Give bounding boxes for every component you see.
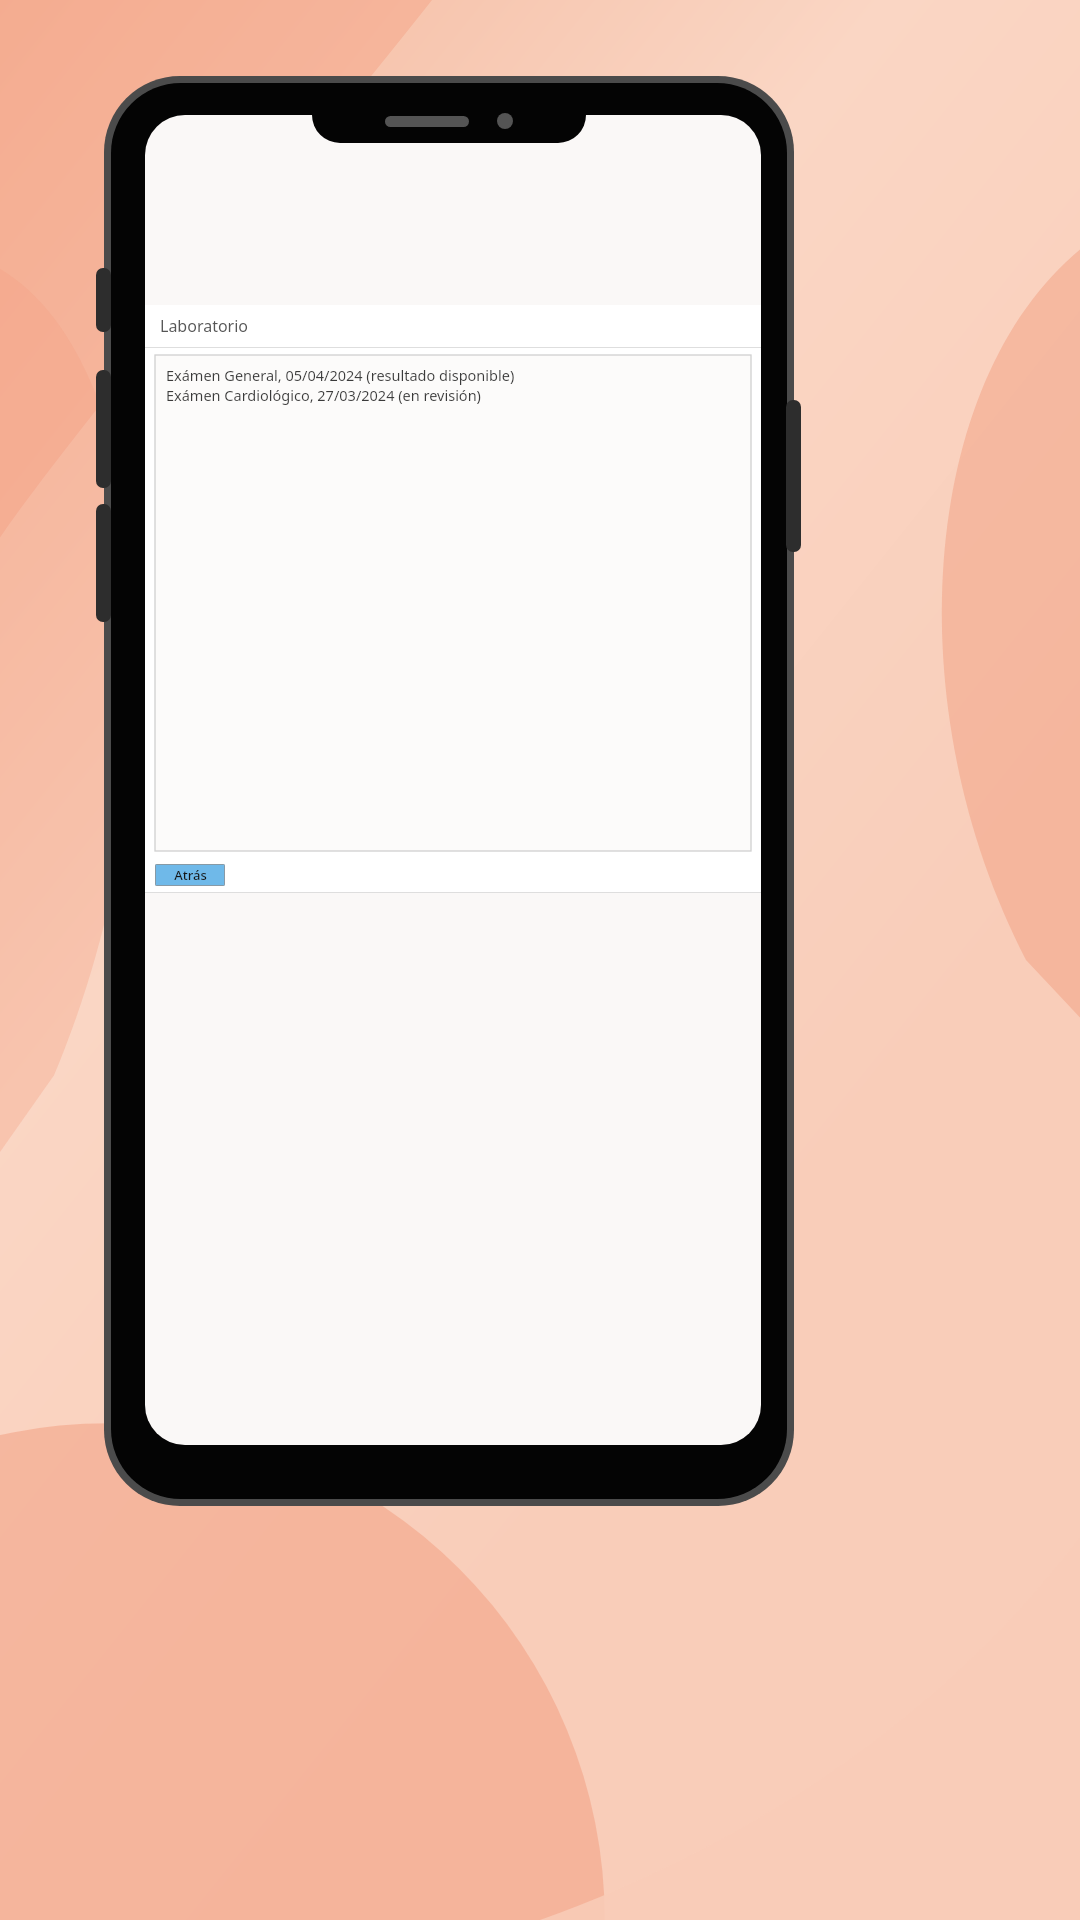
- staticText: Exámen General, 05/04/2024 (resultado di…: [166, 365, 515, 385]
- button[interactable]: Atrás: [155, 864, 225, 886]
- staticText: Exámen Cardiológico, 27/03/2024 (en revi…: [166, 385, 481, 405]
- staticText: Atrás: [174, 866, 207, 884]
- staticText: Laboratorio: [160, 315, 249, 337]
